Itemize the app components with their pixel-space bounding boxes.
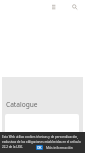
button[interactable]: Search: [69, 1, 80, 12]
staticText: OK: [37, 146, 42, 150]
staticText: Esta Web utiliza cookies técnicas y de p…: [2, 135, 83, 148]
button[interactable]: OK: [36, 145, 43, 150]
staticText: Catalogue: [6, 100, 38, 109]
button[interactable]: Más información: [46, 145, 73, 150]
button[interactable]: Menu: [48, 1, 59, 12]
staticText: Más información: [46, 145, 73, 150]
